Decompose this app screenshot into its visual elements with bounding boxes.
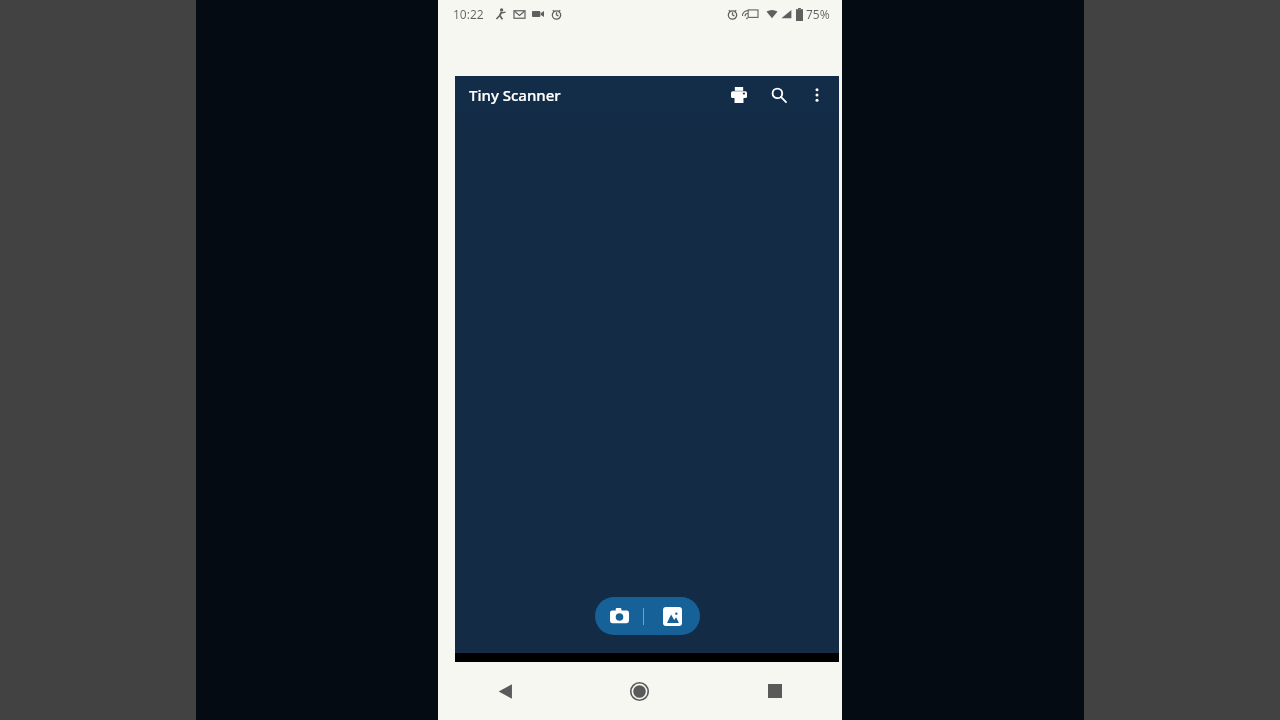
button[interactable]: Import from gallery <box>644 597 700 635</box>
button[interactable]: Recent apps <box>707 662 842 720</box>
button[interactable]: Home <box>572 662 707 720</box>
staticText: 75% <box>806 6 830 22</box>
button[interactable]: Print <box>723 79 755 111</box>
button[interactable]: Take photo with camera <box>595 597 643 635</box>
button[interactable]: Back <box>438 662 572 720</box>
staticText: 10:22 <box>453 6 484 22</box>
button[interactable]: More options <box>801 79 833 111</box>
button[interactable]: Search <box>763 79 795 111</box>
staticText: Tiny Scanner <box>469 85 561 105</box>
